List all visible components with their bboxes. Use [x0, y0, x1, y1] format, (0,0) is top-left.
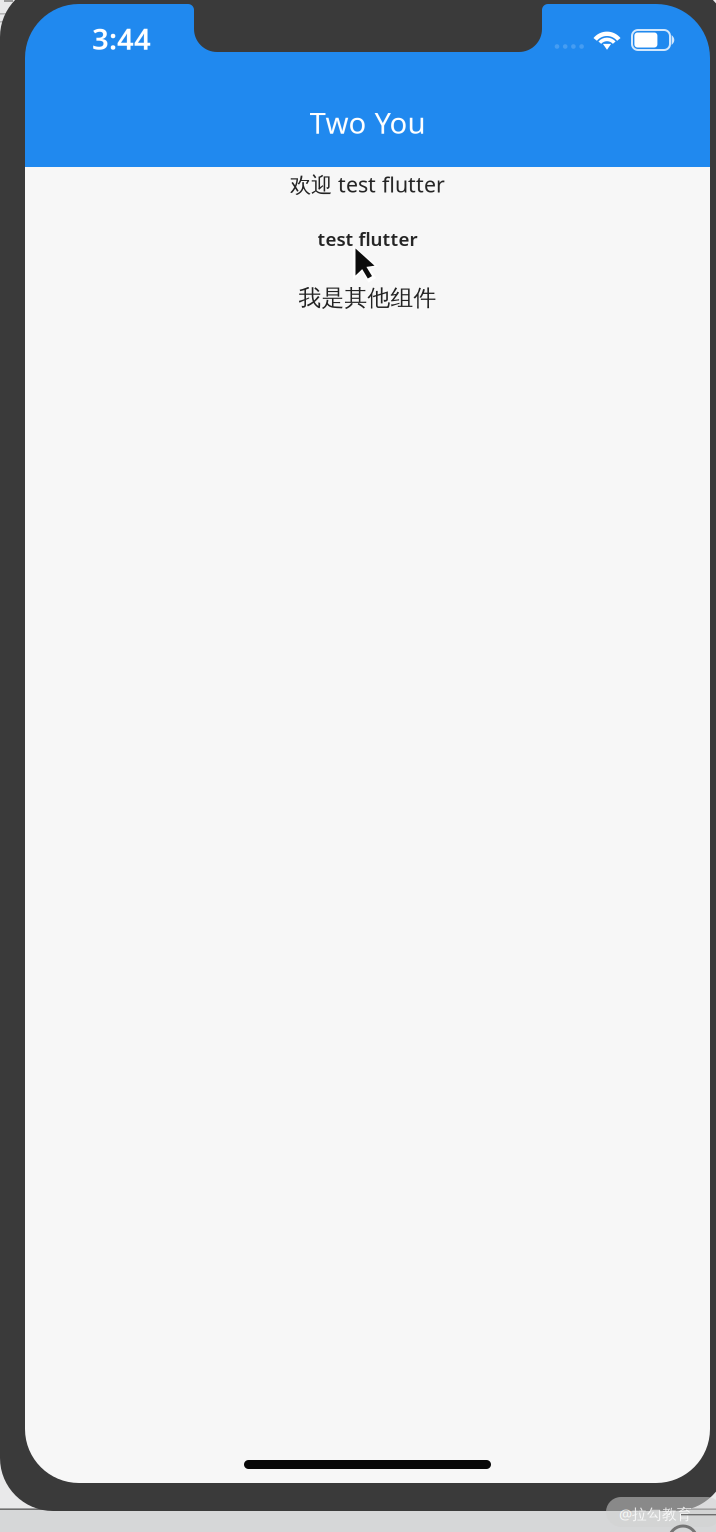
staticText: @拉勾教育	[619, 1504, 692, 1523]
staticText: 我是其他组件	[298, 284, 436, 312]
staticText: 3:44	[92, 19, 151, 58]
staticText: Two You	[309, 103, 425, 142]
staticText: test flutter	[317, 226, 417, 251]
staticText: 欢迎 test flutter	[290, 170, 445, 198]
